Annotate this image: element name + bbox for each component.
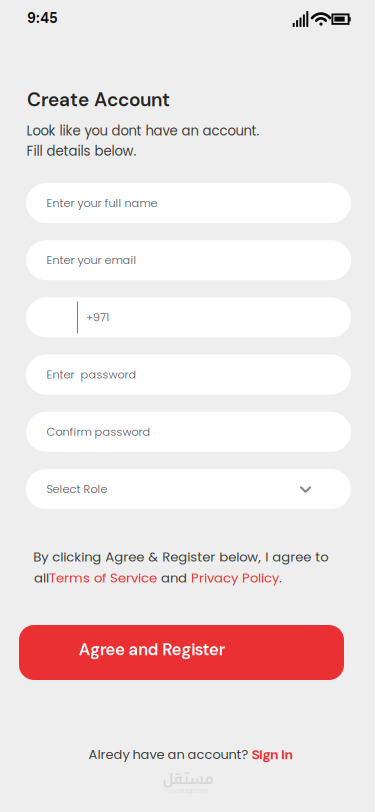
button[interactable]: Confirm password (26, 412, 351, 452)
button[interactable]: +971 (26, 297, 351, 337)
staticText: all (34, 569, 49, 587)
staticText: Select Role (46, 481, 107, 497)
staticText: Enter your email (46, 252, 136, 268)
staticText: Confirm password (46, 424, 150, 440)
staticText: . (279, 569, 282, 587)
button[interactable]: Terms of Service (49, 569, 157, 587)
staticText: Enter password (46, 367, 136, 382)
staticText: Sign In (251, 745, 293, 763)
button[interactable]: Privacy Policy (191, 569, 279, 587)
staticText: Agree and Register (79, 639, 226, 660)
button[interactable]: Enter your full name (26, 183, 351, 223)
staticText: مستقل (162, 765, 213, 793)
staticText: +971 (86, 310, 109, 325)
button[interactable]: Select Role (26, 469, 351, 509)
staticText: Alredy have an account? (88, 745, 251, 764)
button[interactable]: Enter password (26, 355, 351, 395)
button[interactable]: Agree and Register (19, 625, 344, 680)
button[interactable]: Enter your email (26, 240, 351, 280)
staticText: and (157, 569, 191, 587)
staticText: Look like you dont have an account. Fill… (26, 122, 259, 160)
staticText: By clicking Agree & Register below, I ag… (33, 548, 328, 566)
staticText: Enter your full name (46, 195, 157, 211)
staticText: Privacy Policy (191, 569, 279, 587)
staticText: Terms of Service (49, 569, 157, 587)
staticText: 9:45 (27, 9, 58, 27)
staticText: mostaql.com (167, 786, 209, 795)
button[interactable]: Sign In (251, 745, 293, 763)
staticText: Create Account (27, 87, 170, 112)
